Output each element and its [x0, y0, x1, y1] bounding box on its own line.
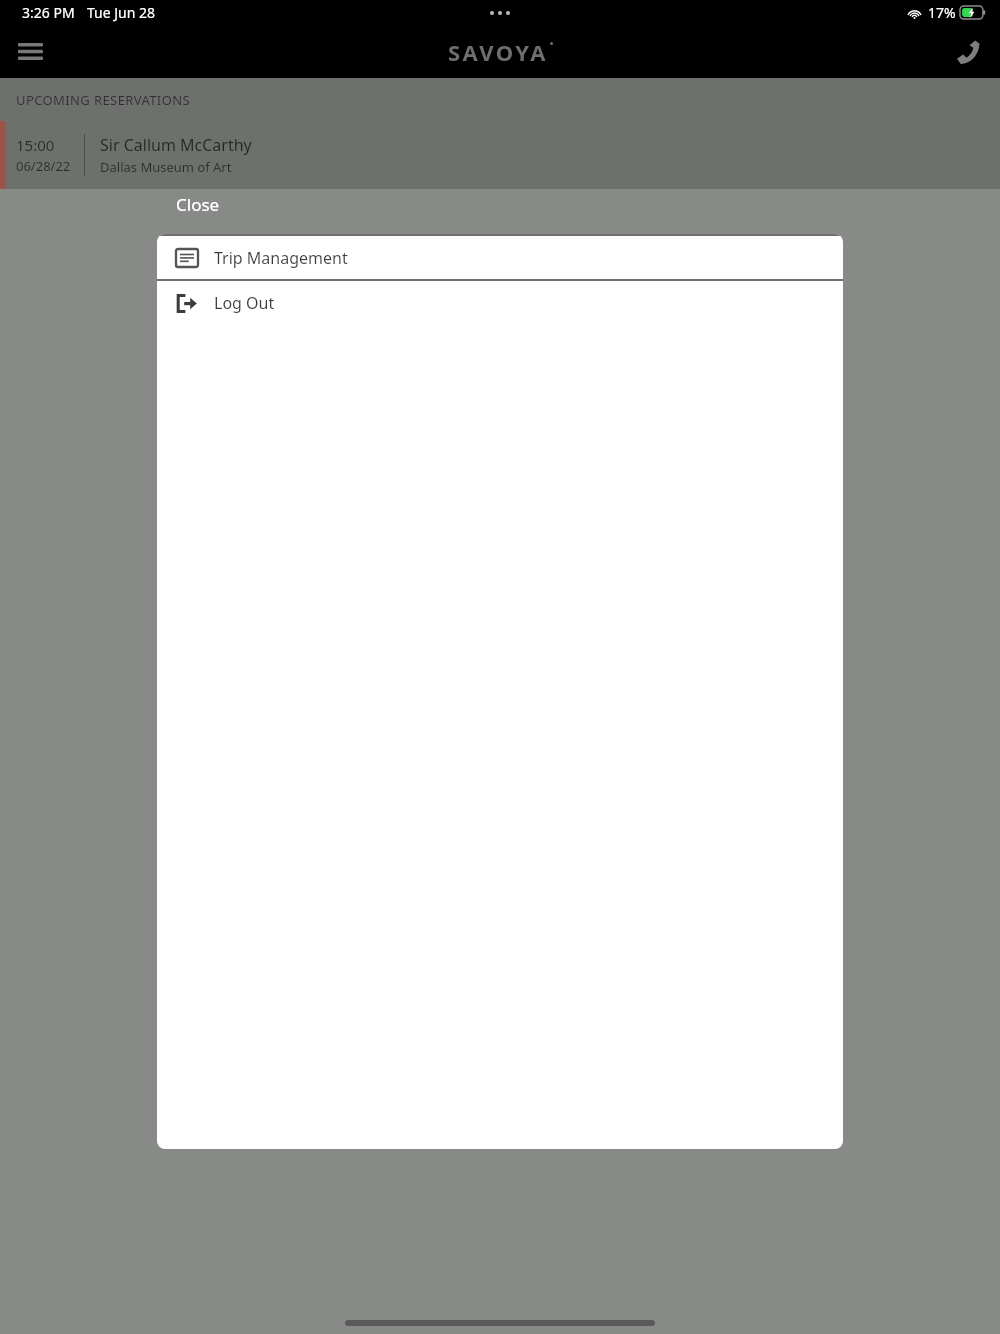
button[interactable]: 15:00 [0, 121, 1000, 189]
staticText: Log Out [214, 292, 275, 314]
staticText: Dallas Museum of Art [100, 158, 232, 176]
staticText: 17% [928, 3, 956, 22]
staticText: 06/28/22 [16, 157, 71, 175]
staticText: Close [176, 193, 220, 216]
staticText: 3:26 PM [22, 3, 75, 22]
button[interactable]: Trip Management [157, 236, 843, 279]
staticText: 15:00 [16, 135, 55, 155]
staticText: Trip Management [214, 247, 348, 269]
staticText: UPCOMING RESERVATIONS [16, 91, 191, 109]
staticText: Sir Callum McCarthy [100, 134, 252, 156]
button[interactable]: Menu [0, 25, 60, 78]
button[interactable]: Close [157, 193, 220, 222]
button[interactable]: Log Out [157, 281, 843, 324]
staticText: Tue Jun 28 [87, 3, 156, 22]
button[interactable]: Call [936, 25, 1000, 78]
staticText: SAVOYA [448, 37, 548, 67]
